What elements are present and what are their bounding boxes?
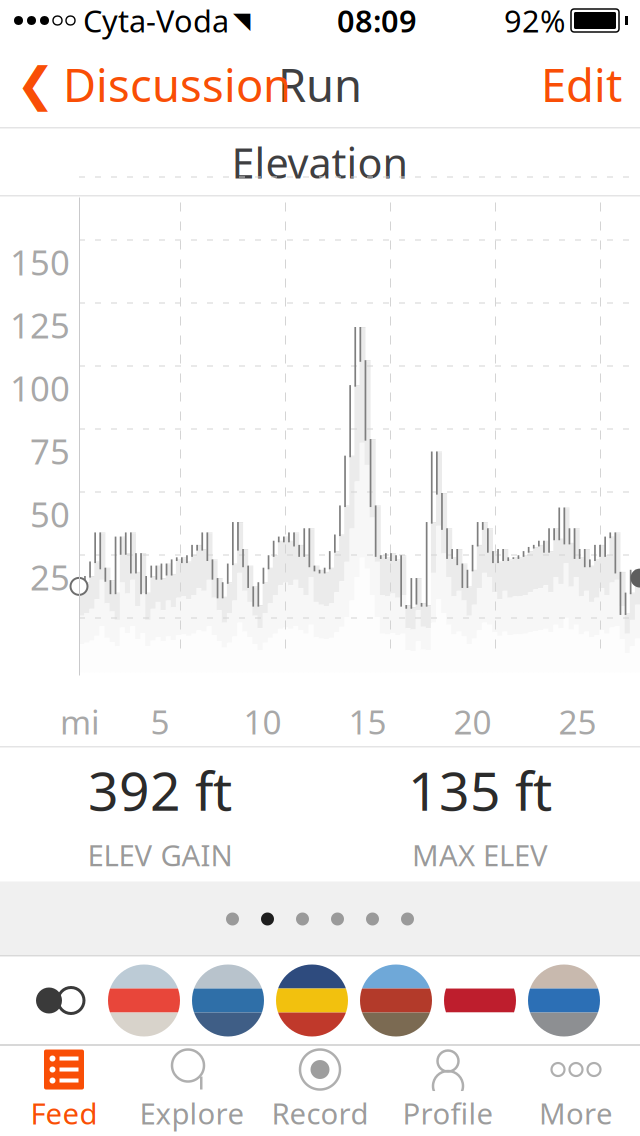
staticText: ❮ — [16, 58, 55, 111]
button[interactable]: Athlete 3 — [270, 964, 354, 1036]
staticText: 135 ft — [408, 755, 552, 825]
staticText: 100 — [10, 365, 70, 411]
staticText: MAX ELEV — [412, 835, 548, 874]
staticText: mi — [60, 699, 100, 744]
staticText: 125 — [10, 302, 70, 348]
button[interactable]: Back to Discussion — [0, 46, 291, 123]
staticText: Feed — [30, 1093, 97, 1132]
staticText: Edit — [541, 54, 622, 115]
button[interactable]: Athlete 4 — [354, 964, 438, 1036]
button[interactable]: Athlete 6 — [522, 964, 606, 1036]
button[interactable]: Edit — [541, 46, 640, 123]
button[interactable]: Feed — [0, 1041, 128, 1136]
button[interactable]: Explore — [128, 1041, 256, 1136]
button[interactable]: More — [512, 1041, 640, 1136]
staticText: 92% — [504, 0, 565, 41]
staticText: 5 — [150, 699, 169, 744]
staticText: 25 — [30, 554, 70, 600]
staticText: Cyta-Voda — [83, 0, 229, 41]
button[interactable]: Athlete 5 — [438, 964, 522, 1036]
staticText: 08:09 — [337, 0, 417, 41]
staticText: Profile — [402, 1093, 493, 1132]
staticText: 50 — [30, 491, 70, 537]
staticText: 10 — [243, 699, 281, 744]
staticText: Discussion — [63, 54, 291, 115]
staticText: 392 ft — [88, 755, 232, 825]
staticText: ◥ — [233, 8, 250, 33]
staticText: 150 — [10, 239, 70, 285]
button[interactable]: Record — [256, 1041, 384, 1136]
staticText: 25 — [558, 699, 596, 744]
staticText: ELEV GAIN — [87, 835, 232, 874]
staticText: 15 — [348, 699, 386, 744]
staticText: 75 — [30, 428, 70, 474]
staticText: Record — [271, 1093, 368, 1132]
staticText: More — [539, 1093, 613, 1132]
staticText: Run — [278, 54, 362, 115]
staticText: Explore — [139, 1093, 244, 1132]
button[interactable]: Profile — [384, 1041, 512, 1136]
button[interactable]: Kudos — [18, 958, 102, 1042]
staticText: 20 — [453, 699, 491, 744]
staticText: Elevation — [231, 135, 408, 190]
button[interactable]: Athlete 1 — [102, 964, 186, 1036]
button[interactable]: Athlete 2 — [186, 964, 270, 1036]
